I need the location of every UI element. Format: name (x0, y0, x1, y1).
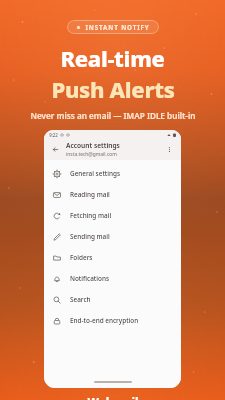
staticText: Sending mail (70, 232, 110, 241)
button[interactable]: INSTANT NOTIFY (67, 20, 159, 34)
button[interactable]: Reading mail (44, 184, 181, 205)
button[interactable]: Folders (44, 247, 181, 268)
staticText: Reading mail (70, 190, 110, 199)
staticText: End-to-end encryption (70, 316, 139, 325)
staticText: Never miss an email — IMAP IDLE built-in (30, 110, 196, 121)
staticText: Notifications (70, 274, 110, 283)
button[interactable]: End-to-end encryption (44, 310, 181, 331)
button[interactable]: Fetching mail (44, 205, 181, 226)
staticText: insta.tech@gmail.com (66, 151, 117, 158)
staticText: Push Alerts (51, 74, 175, 104)
staticText: INSTANT NOTIFY (85, 23, 150, 31)
staticText: Folders (70, 253, 93, 262)
staticText: Webmail (87, 395, 139, 400)
staticText: 9:22 (49, 132, 58, 138)
button[interactable]: Notifications (44, 268, 181, 289)
button[interactable]: General settings (44, 163, 181, 184)
staticText: Fetching mail (70, 211, 112, 220)
staticText: General settings (70, 169, 121, 178)
button[interactable]: More options (163, 143, 176, 156)
staticText: Real-time (60, 43, 165, 73)
staticText: Search (70, 295, 91, 304)
staticText: Account settings (66, 141, 120, 150)
button[interactable]: Sending mail (44, 226, 181, 247)
button[interactable]: Search (44, 289, 181, 310)
button[interactable]: Back (49, 143, 62, 156)
